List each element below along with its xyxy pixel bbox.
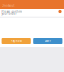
button[interactable]: Account — [58, 10, 62, 13]
staticText: your order — [1, 12, 16, 15]
button[interactable]: Later — [33, 38, 62, 44]
button[interactable]: Pay now — [2, 38, 31, 44]
staticText: Later — [45, 39, 51, 43]
staticText: Please confirm — [1, 10, 21, 13]
staticText: Pay now — [11, 39, 22, 43]
staticText: Checkout — [1, 4, 14, 8]
button[interactable]: Checkout — [0, 4, 14, 9]
